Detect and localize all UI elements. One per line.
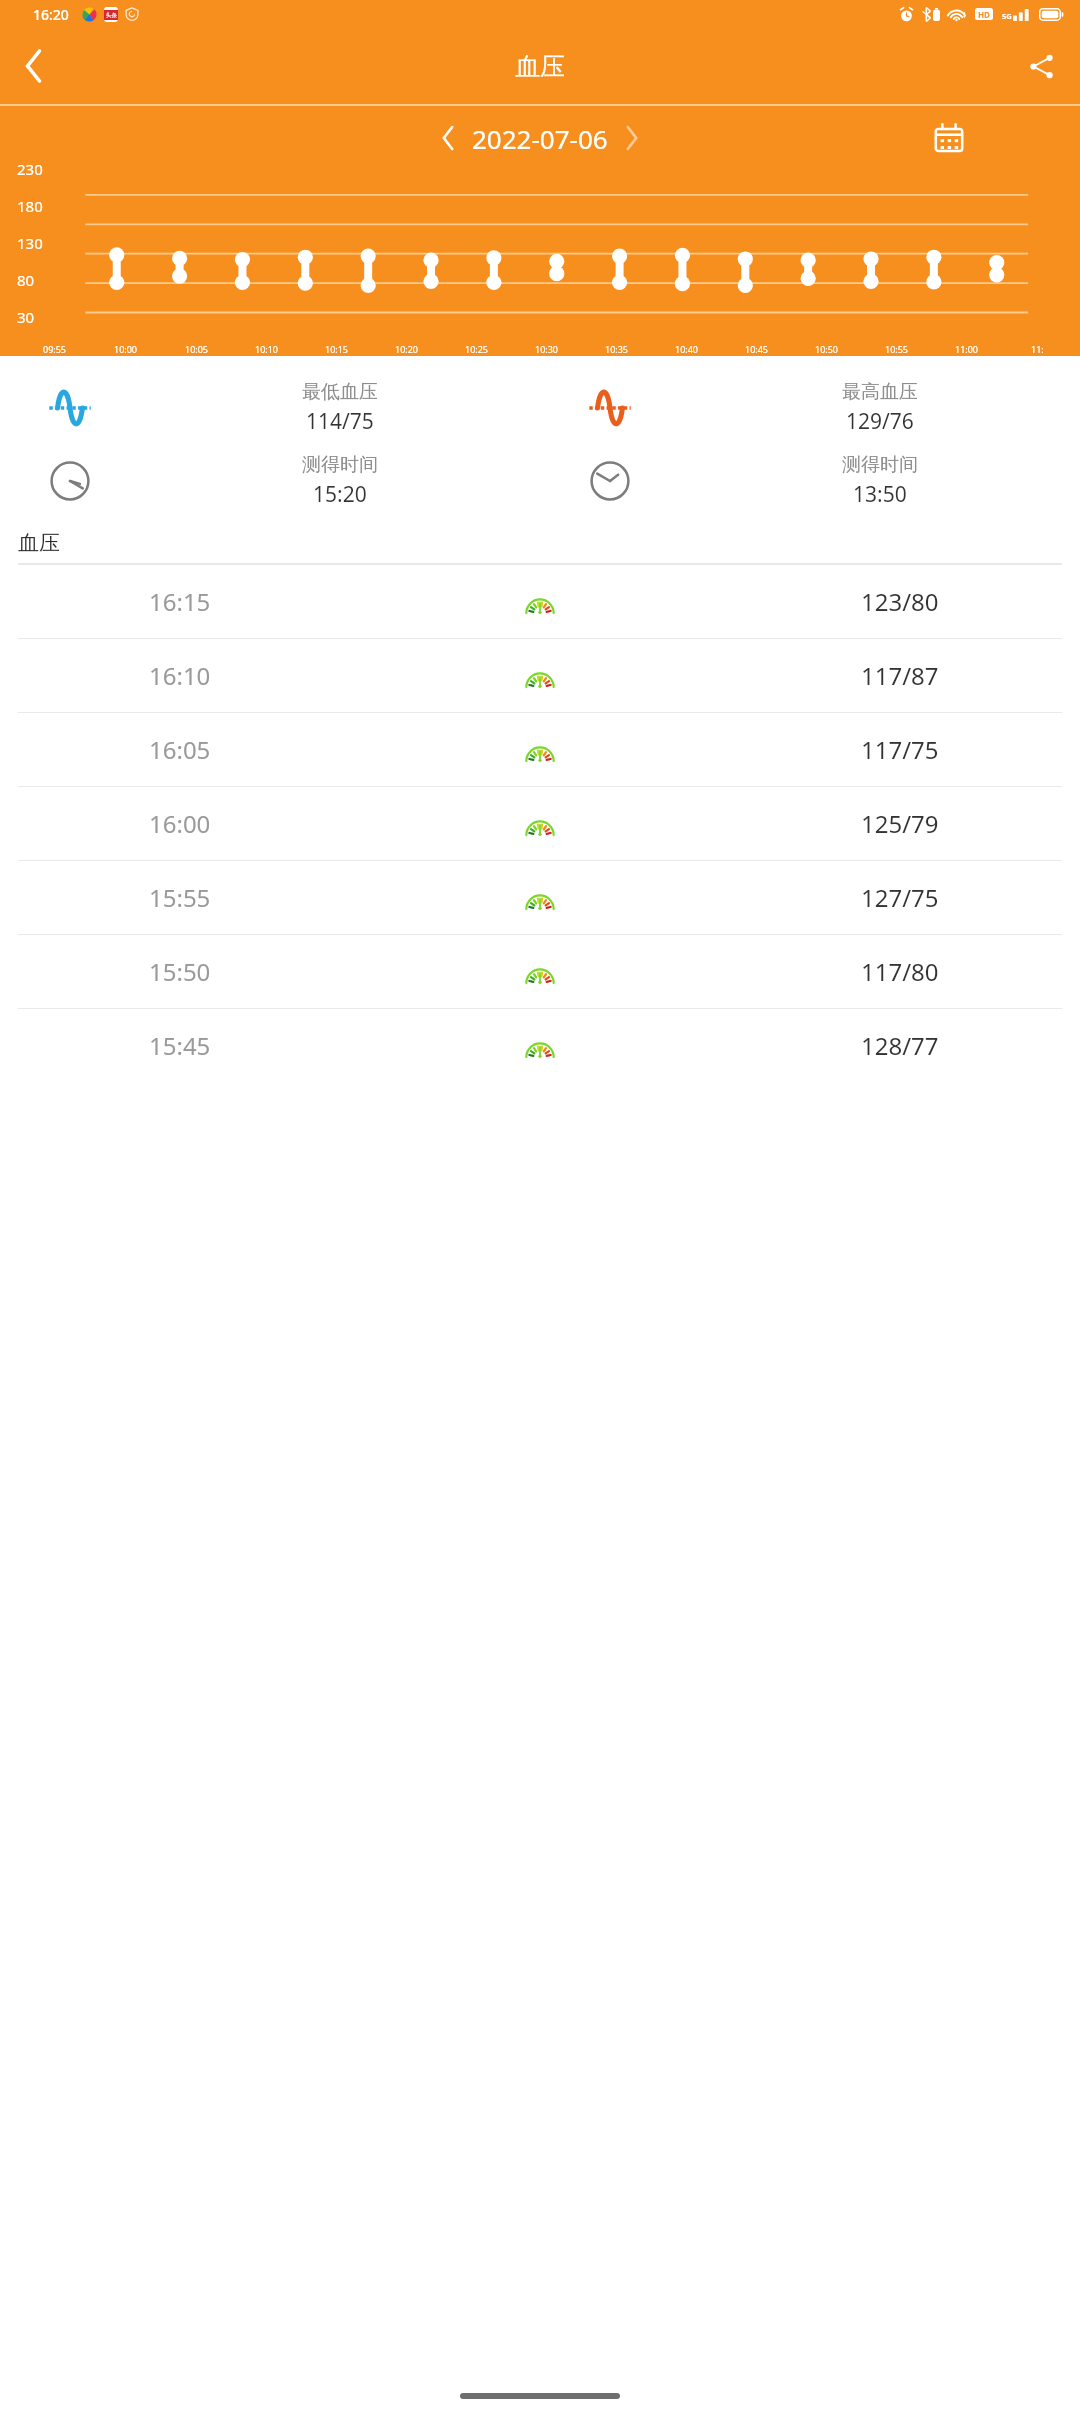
staticText: 10:30 <box>535 343 559 355</box>
staticText: 130 <box>17 233 43 253</box>
button[interactable]: 2022-07-06 <box>472 121 608 156</box>
staticText: 血压 <box>18 530 60 556</box>
button[interactable]: 15:50 <box>0 935 1080 1008</box>
button[interactable]: 16:15 <box>0 565 1080 638</box>
staticText: 10:10 <box>255 343 279 355</box>
button[interactable]: 测得时间 <box>0 444 540 517</box>
staticText: 117/80 <box>861 955 939 988</box>
button[interactable]: 15:55 <box>0 861 1080 934</box>
staticText: 11:00 <box>955 343 979 355</box>
button[interactable]: 最高血压 <box>540 371 1080 444</box>
staticText: 117/87 <box>861 659 939 692</box>
button[interactable]: Share <box>1012 37 1070 95</box>
staticText: 123/80 <box>861 585 939 618</box>
staticText: 10:25 <box>465 343 489 355</box>
staticText: 180 <box>17 196 43 216</box>
button[interactable]: 15:45 <box>0 1009 1080 1082</box>
button[interactable]: 16:10 <box>0 639 1080 712</box>
staticText: 15:45 <box>149 1029 211 1062</box>
button[interactable]: Next day <box>608 114 656 162</box>
staticText: 10:20 <box>395 343 419 355</box>
staticText: 10:00 <box>114 343 138 355</box>
staticText: 16:00 <box>149 807 211 840</box>
staticText: 10:45 <box>745 343 769 355</box>
staticText: 15:55 <box>149 881 211 914</box>
staticText: 129/76 <box>846 407 914 436</box>
staticText: 09:55 <box>43 343 67 355</box>
staticText: HD <box>978 9 990 20</box>
staticText: 16:10 <box>149 659 211 692</box>
staticText: 16:20 <box>33 5 69 24</box>
button[interactable]: 16:05 <box>0 713 1080 786</box>
button[interactable]: 测得时间 <box>540 444 1080 517</box>
staticText: 11: <box>1031 343 1044 355</box>
button[interactable]: 最低血压 <box>0 371 540 444</box>
staticText: 13:50 <box>853 480 907 509</box>
staticText: 测得时间 <box>302 453 378 477</box>
staticText: 10:50 <box>815 343 839 355</box>
button[interactable]: Previous day <box>424 114 472 162</box>
staticText: 230 <box>17 159 43 179</box>
button[interactable]: Back <box>4 37 62 95</box>
staticText: 10:55 <box>885 343 909 355</box>
staticText: 80 <box>17 270 35 290</box>
staticText: 10:35 <box>605 343 629 355</box>
staticText: 5G <box>1002 11 1012 21</box>
button[interactable]: 16:00 <box>0 787 1080 860</box>
staticText: 114/75 <box>306 407 374 436</box>
staticText: 117/75 <box>861 733 939 766</box>
staticText: 125/79 <box>861 807 939 840</box>
staticText: 10:05 <box>185 343 209 355</box>
staticText: 16:15 <box>149 585 211 618</box>
staticText: 最高血压 <box>842 380 918 404</box>
staticText: 最低血压 <box>302 380 378 404</box>
staticText: 15:20 <box>313 480 367 509</box>
staticText: 头条 <box>106 12 117 19</box>
staticText: 30 <box>17 307 35 327</box>
staticText: 10:40 <box>675 343 699 355</box>
staticText: 测得时间 <box>842 453 918 477</box>
button[interactable]: Pick date <box>924 113 974 163</box>
staticText: 128/77 <box>861 1029 939 1062</box>
staticText: 血压 <box>515 51 565 82</box>
staticText: 127/75 <box>861 881 939 914</box>
staticText: 10:15 <box>325 343 349 355</box>
staticText: 16:05 <box>149 733 211 766</box>
staticText: 15:50 <box>149 955 211 988</box>
